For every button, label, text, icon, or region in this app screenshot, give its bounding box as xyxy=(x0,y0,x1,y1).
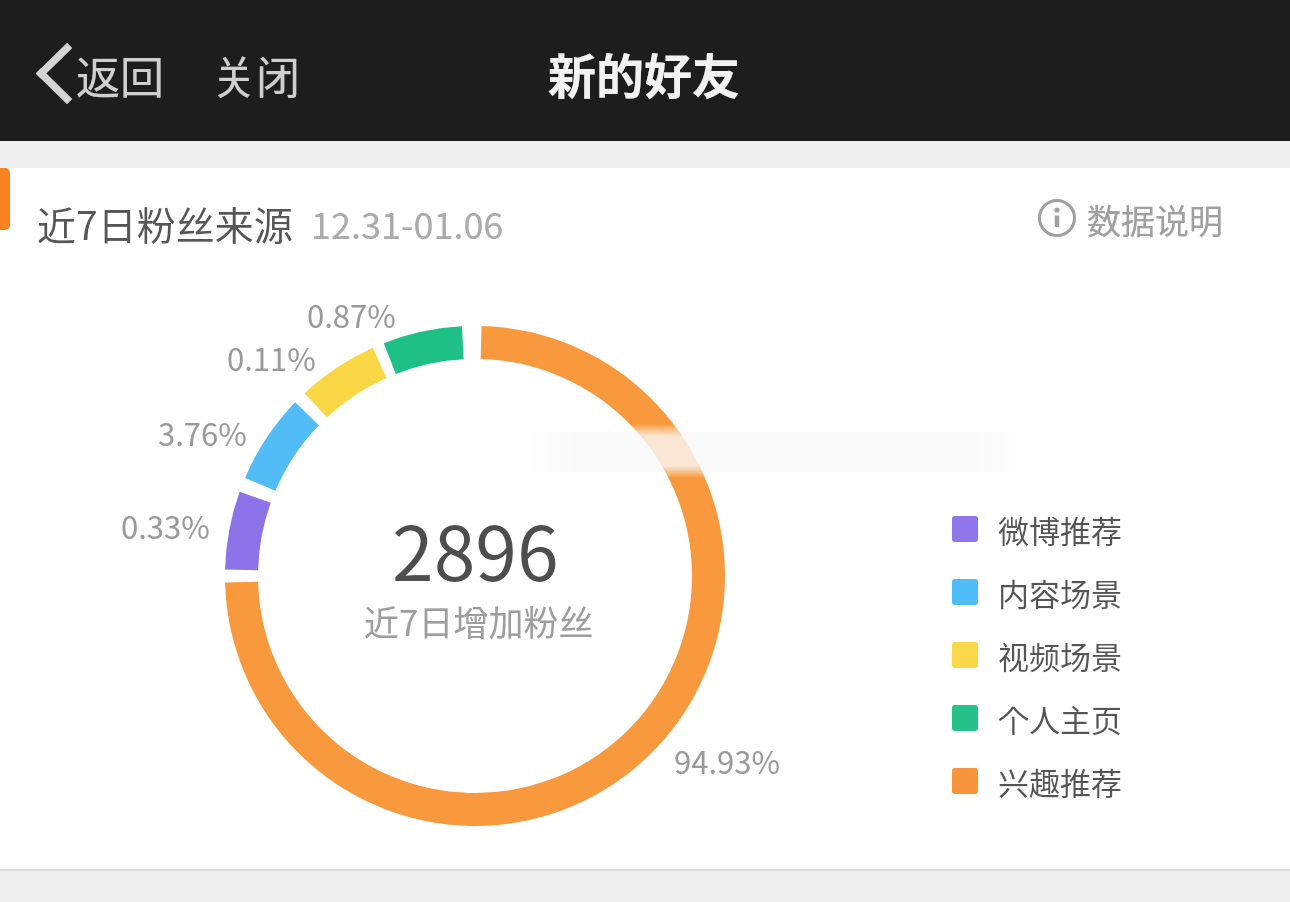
staticText: 新的好友 xyxy=(548,38,741,108)
button[interactable] xyxy=(1030,190,1240,242)
staticText: 3.76% xyxy=(158,410,247,455)
staticText: 返回 xyxy=(76,43,164,107)
staticText: 数据说明 xyxy=(1087,195,1223,244)
staticText: 2896 xyxy=(392,494,559,603)
staticText: 内容场景 xyxy=(998,570,1122,615)
button[interactable]: 内容场景 xyxy=(952,568,1122,616)
button[interactable]: 视频场景 xyxy=(952,631,1122,679)
button[interactable]: 个人主页 xyxy=(952,694,1122,742)
staticText: 兴趣推荐 xyxy=(998,759,1122,804)
staticText: 0.87% xyxy=(307,292,396,337)
button[interactable]: 兴趣推荐 xyxy=(952,757,1122,805)
staticText: 关闭 xyxy=(212,43,300,107)
staticText: 视频场景 xyxy=(998,633,1122,678)
staticText: 近7日粉丝来源 xyxy=(37,195,293,251)
staticText: 个人主页 xyxy=(998,696,1122,741)
staticText: 近7日增加粉丝 xyxy=(364,595,594,646)
button[interactable]: 微博推荐 xyxy=(952,505,1122,553)
staticText: 0.11% xyxy=(227,335,316,380)
button[interactable] xyxy=(20,38,180,110)
staticText: 0.33% xyxy=(121,503,210,548)
button[interactable] xyxy=(200,38,320,110)
staticText: 微博推荐 xyxy=(998,507,1122,552)
staticText: 94.93% xyxy=(674,738,780,783)
staticText: 12.31-01.06 xyxy=(311,197,504,249)
